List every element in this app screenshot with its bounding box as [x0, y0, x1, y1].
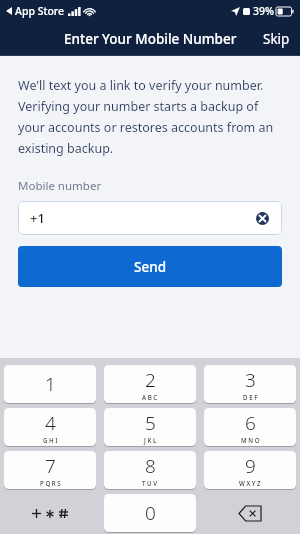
button[interactable]: 3 — [204, 365, 296, 403]
staticText: 5 — [145, 410, 156, 436]
staticText: P Q R S — [40, 479, 61, 487]
staticText: Send — [134, 258, 167, 276]
staticText: 3 — [245, 367, 256, 393]
staticText: 6 — [245, 410, 256, 436]
staticText: existing backup. — [18, 140, 114, 157]
staticText: App Store — [15, 4, 65, 18]
staticText: 0 — [145, 500, 156, 526]
staticText: +1 — [30, 209, 45, 227]
staticText: 39% — [253, 4, 274, 18]
staticText: Skip — [263, 30, 290, 48]
staticText: 8 — [145, 453, 156, 479]
button[interactable]: Skip — [253, 26, 300, 52]
button[interactable]: 0 — [104, 494, 196, 532]
staticText: J K L — [144, 436, 157, 444]
staticText: D E F — [243, 393, 258, 401]
button[interactable]: plus star pound — [4, 494, 96, 532]
button[interactable]: Send — [18, 246, 282, 287]
staticText: 9 — [245, 453, 256, 479]
button[interactable]: 2 — [104, 365, 196, 403]
staticText: 1 — [45, 371, 56, 397]
button[interactable]: 4 — [4, 408, 96, 446]
button[interactable]: 1 — [4, 365, 96, 403]
staticText: 2 — [145, 367, 156, 393]
button[interactable]: +1 — [18, 201, 282, 235]
button[interactable]: Backspace — [204, 494, 296, 532]
button[interactable]: 5 — [104, 408, 196, 446]
staticText: 4 — [45, 410, 56, 436]
staticText: A B C — [142, 393, 158, 401]
button[interactable]: 7 — [4, 451, 96, 489]
button[interactable]: 9 — [204, 451, 296, 489]
staticText: your accounts or restores accounts from … — [18, 119, 274, 136]
staticText: T U V — [142, 479, 158, 487]
button[interactable]: 6 — [204, 408, 296, 446]
staticText: We'll text you a link to verify your num… — [18, 77, 264, 94]
button[interactable]: Clear text — [251, 207, 273, 229]
button[interactable]: 8 — [104, 451, 196, 489]
staticText: G H I — [43, 436, 58, 444]
staticText: M N O — [241, 436, 260, 444]
staticText: Mobile number — [18, 178, 102, 194]
staticText: Verifying your number starts a backup of — [18, 98, 259, 115]
staticText: W X Y Z — [239, 479, 261, 487]
staticText: Enter Your Mobile Number — [64, 30, 237, 48]
staticText: 7 — [45, 453, 56, 479]
button[interactable]: Enter Your Mobile Number — [60, 28, 241, 50]
